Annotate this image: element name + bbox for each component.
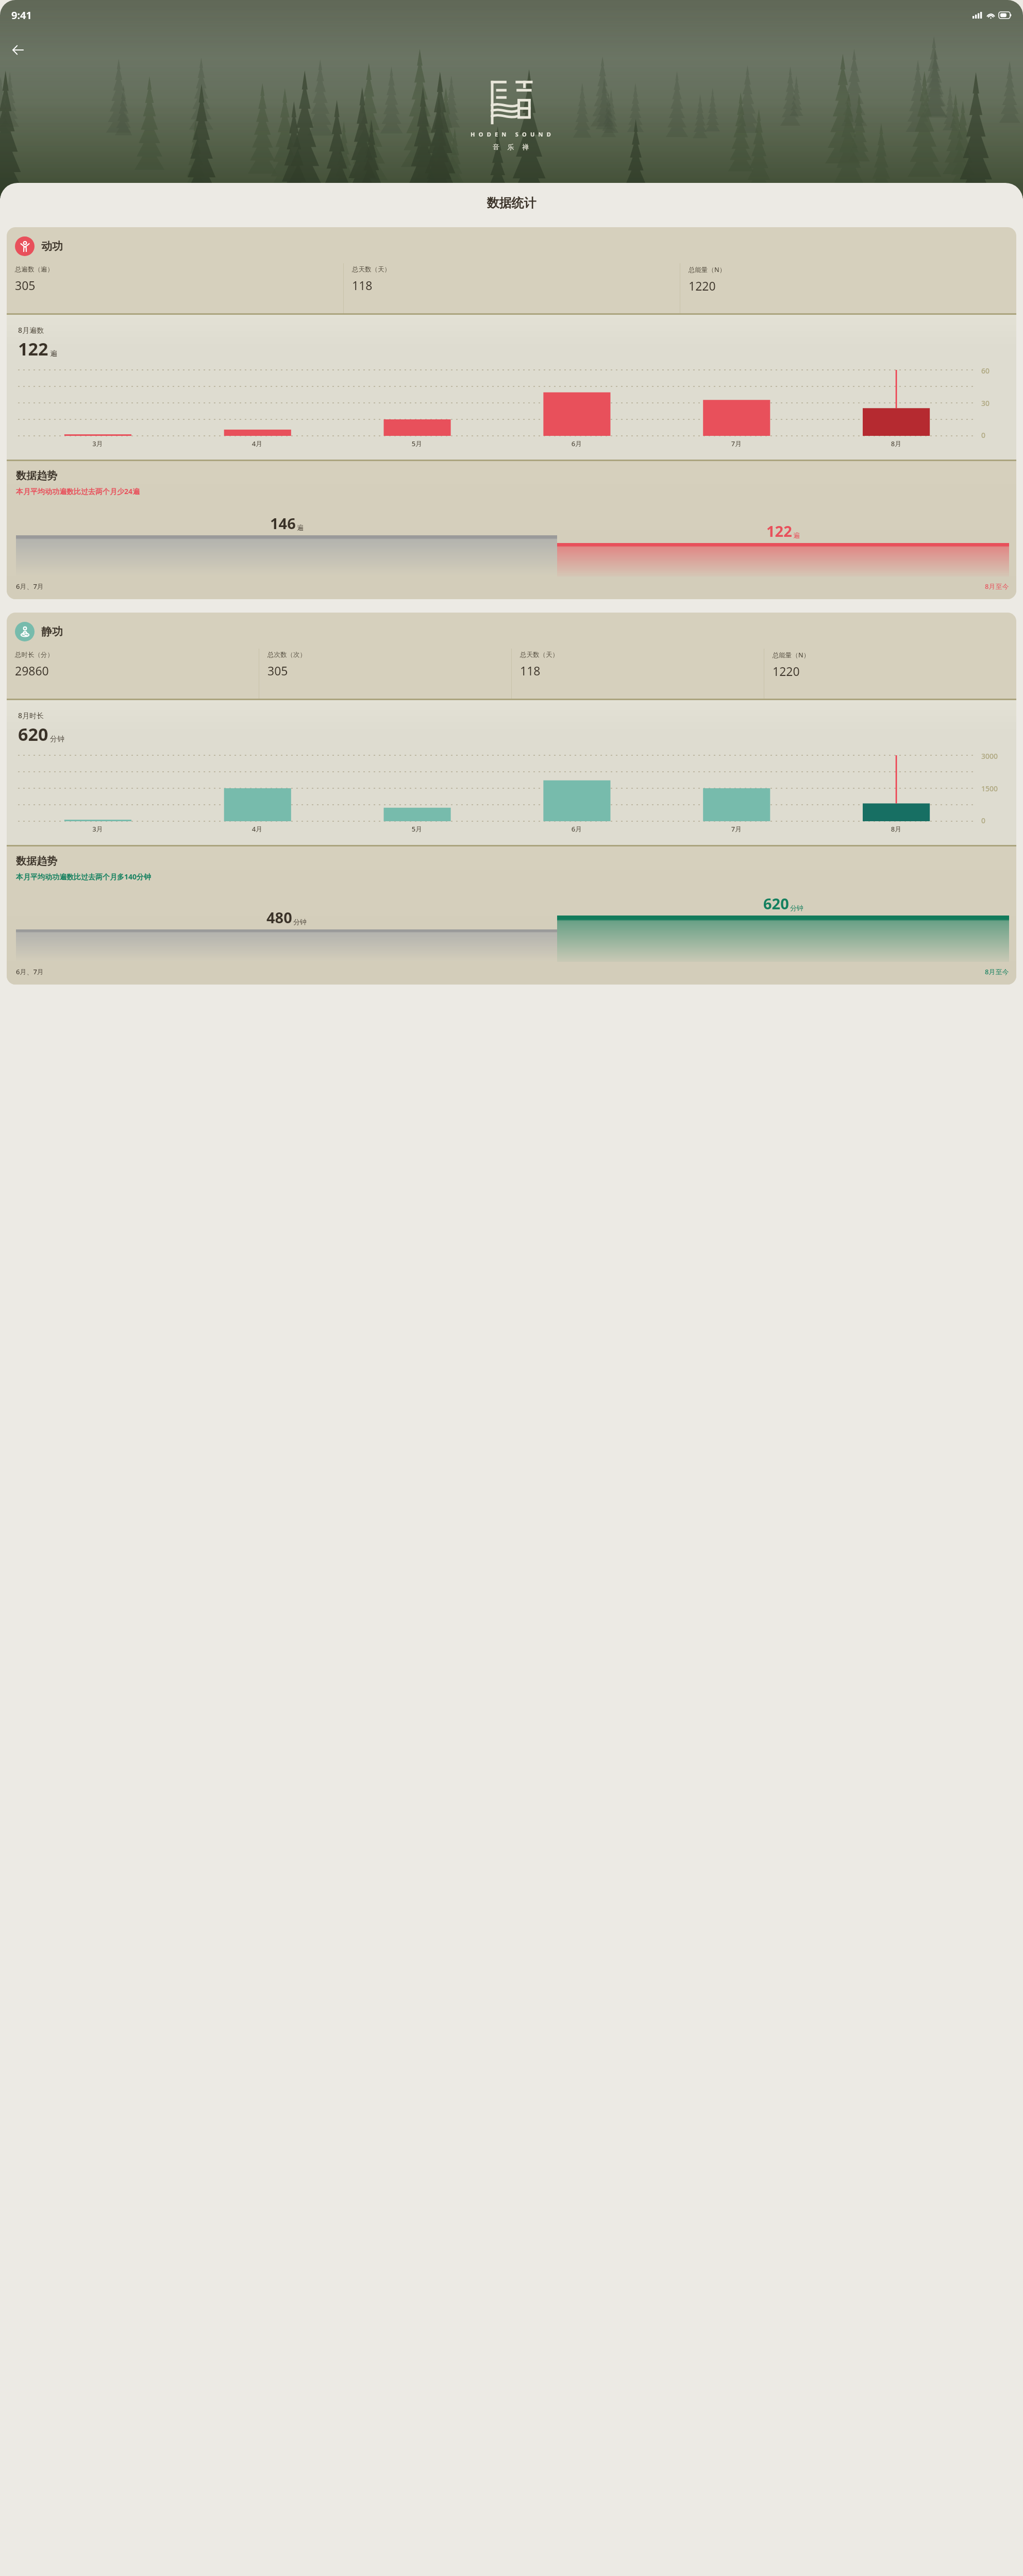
staticText: 6月 (497, 824, 657, 834)
staticText: 620 (18, 722, 48, 746)
staticText: 6月、7月 (16, 582, 44, 591)
staticText: 总能量（N） (773, 651, 810, 659)
staticText: 1220 (689, 278, 716, 294)
staticText: 29860 (15, 663, 49, 679)
staticText: 总天数（天） (520, 651, 559, 659)
staticText: 遍 (50, 349, 57, 359)
staticText: 6月、7月 (16, 967, 44, 976)
button[interactable]: Back (6, 38, 30, 62)
staticText: 数据趋势 (16, 469, 57, 482)
staticText: 分钟 (50, 735, 64, 744)
staticText: 5月 (337, 439, 497, 448)
staticText: 305 (267, 663, 288, 679)
staticText: 音 乐 禅 (493, 142, 531, 151)
staticText: 1220 (773, 663, 800, 679)
staticText: 122 (766, 521, 792, 541)
staticText: 8月至今 (985, 582, 1009, 591)
staticText: 数据统计 (0, 195, 1023, 211)
button[interactable]: 静功 (7, 613, 1016, 985)
staticText: H O D E N S O U N D (471, 130, 552, 138)
staticText: 4月 (177, 824, 337, 834)
staticText: 3000 (981, 751, 998, 761)
staticText: 60 (981, 366, 990, 376)
staticText: 6月 (497, 439, 657, 448)
button[interactable]: 动功 (7, 227, 1016, 599)
staticText: 8月至今 (985, 967, 1009, 976)
staticText: 3月 (18, 439, 177, 448)
staticText: 分钟 (293, 918, 307, 926)
staticText: 118 (520, 663, 541, 679)
staticText: 8月时长 (18, 710, 44, 720)
staticText: 7月 (657, 439, 816, 448)
staticText: 遍 (297, 523, 304, 532)
staticText: 8月 (816, 824, 976, 834)
staticText: 静功 (41, 625, 63, 638)
staticText: 30 (981, 398, 990, 408)
staticText: 分钟 (790, 904, 803, 912)
staticText: 总时长（分） (15, 651, 54, 659)
staticText: 8月 (816, 439, 976, 448)
staticText: 0 (981, 816, 986, 825)
staticText: 480 (266, 907, 292, 927)
staticText: 动功 (41, 240, 63, 253)
staticText: 数据趋势 (16, 855, 57, 868)
staticText: 遍 (793, 531, 800, 539)
staticText: 305 (15, 277, 36, 293)
staticText: 总能量（N） (689, 265, 726, 274)
staticText: 总天数（天） (352, 265, 391, 274)
staticText: 7月 (657, 824, 816, 834)
staticText: 146 (270, 513, 296, 533)
staticText: 本月平均动功遍数比过去两个月少24遍 (16, 486, 140, 496)
staticText: 3月 (18, 824, 177, 834)
staticText: 5月 (337, 824, 497, 834)
staticText: 4月 (177, 439, 337, 448)
staticText: 620 (763, 893, 789, 913)
staticText: 本月平均动功遍数比过去两个月多140分钟 (16, 872, 152, 882)
staticText: 122 (18, 337, 48, 361)
staticText: 118 (352, 277, 373, 293)
staticText: 1500 (981, 784, 998, 793)
staticText: 8月遍数 (18, 325, 44, 335)
staticText: 9:41 (11, 8, 32, 22)
staticText: 总次数（次） (267, 651, 306, 659)
staticText: 0 (981, 430, 986, 440)
staticText: 总遍数（遍） (15, 265, 54, 274)
